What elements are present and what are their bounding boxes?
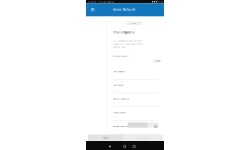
button[interactable]: OK: [127, 22, 142, 25]
staticText: IPv6 prefix: [113, 84, 123, 86]
button[interactable]: SAVE: [88, 134, 123, 141]
staticText: Name server: [113, 111, 126, 114]
staticText: screen will have effect after: [113, 42, 143, 45]
staticText: system boot.: [113, 45, 126, 48]
staticText: OK: [132, 22, 136, 25]
staticText: IPv6 Configuration: [113, 31, 134, 34]
button[interactable]: Back: [108, 145, 111, 148]
staticText: 0: [113, 89, 114, 92]
staticText: CANCEL: [138, 136, 148, 139]
staticText: Second name server: [113, 125, 132, 128]
staticText: All changes except the home: [113, 39, 142, 42]
button[interactable]: CANCEL: [123, 134, 163, 141]
staticText: 12:48: [158, 0, 163, 3]
button[interactable]: DHCPv6 enabled toggle: [153, 59, 161, 63]
button[interactable]: Home: [123, 145, 126, 148]
button[interactable]: Recents: [132, 145, 136, 148]
staticText: Allowed - no sign ongoing: [87, 0, 113, 3]
staticText: Default gateway: [113, 97, 129, 100]
staticText: IPv6 address: [113, 70, 125, 73]
staticText: SAVE: [103, 136, 108, 139]
button[interactable]: Menu: [89, 6, 97, 14]
staticText: Home Network: [112, 8, 135, 12]
staticText: DHCPv6 enabled: [113, 55, 128, 57]
